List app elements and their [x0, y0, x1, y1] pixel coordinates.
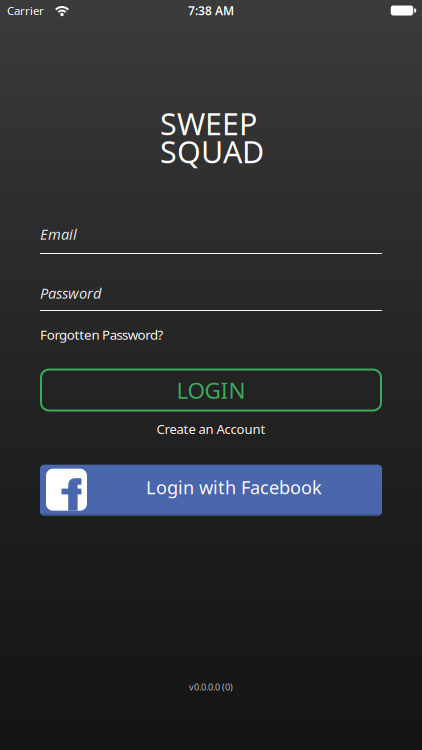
staticText: Carrier — [7, 3, 44, 18]
staticText: LOGIN — [176, 375, 245, 405]
button[interactable]: Login with Facebook — [40, 465, 382, 516]
staticText: v0.0.0.0 (0) — [189, 681, 233, 693]
button[interactable]: LOGIN — [40, 368, 382, 411]
staticText: SQUAD — [160, 131, 264, 172]
staticText: Create an Account — [156, 420, 265, 438]
staticText: Email — [40, 224, 77, 244]
button[interactable]: Create an Account — [156, 420, 265, 438]
button[interactable]: Email — [40, 225, 382, 258]
staticText: SWEEP — [160, 103, 257, 144]
staticText: Login with Facebook — [146, 475, 322, 500]
staticText: 7:38 AM — [188, 2, 234, 19]
staticText: Password — [40, 283, 101, 303]
button[interactable]: Password — [40, 283, 382, 316]
button[interactable]: Forgotten Password? — [40, 325, 382, 344]
staticText: Forgotten Password? — [40, 325, 164, 344]
